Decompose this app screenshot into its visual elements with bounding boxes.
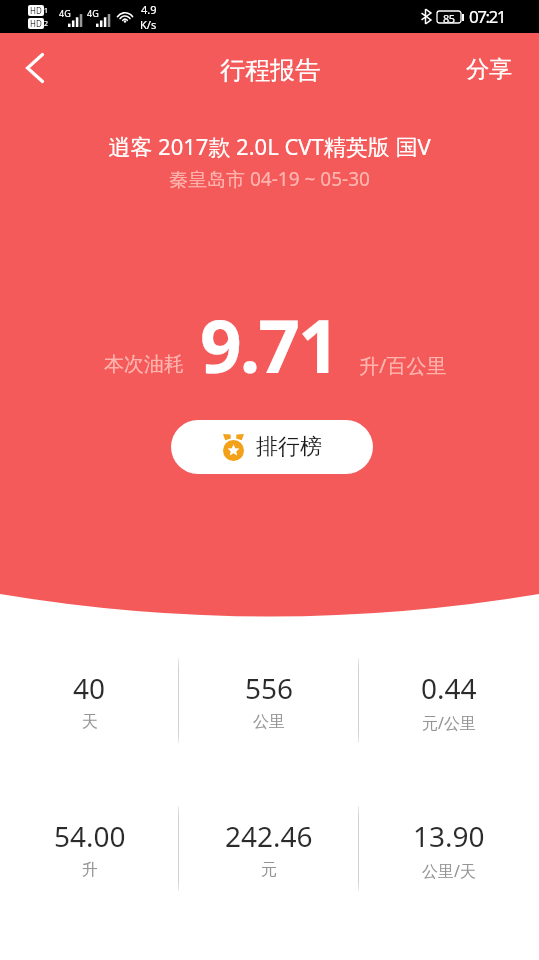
staticText: 升 <box>82 860 98 880</box>
staticText: 元 <box>261 860 277 880</box>
staticText: 升/百公里 <box>359 352 447 379</box>
staticText: 242.46 <box>225 817 313 855</box>
staticText: 4G <box>87 7 99 19</box>
staticText: 54.00 <box>54 817 126 855</box>
staticText: 4.9 <box>141 2 157 17</box>
button[interactable]: 40 <box>0 669 179 732</box>
button[interactable]: 54.00 <box>0 817 179 880</box>
staticText: 2 <box>44 19 49 29</box>
staticText: 排行榜 <box>256 433 322 461</box>
staticText: 9.71 <box>200 295 338 394</box>
staticText: 行程报告 <box>220 55 320 86</box>
staticText: 40 <box>73 669 106 707</box>
staticText: 4G <box>59 7 71 19</box>
button[interactable]: 13.90 <box>359 817 539 882</box>
staticText: 1 <box>44 6 49 16</box>
button[interactable]: 分享 <box>439 34 539 103</box>
staticText: 秦皇岛市 04-19 ~ 05-30 <box>0 166 539 192</box>
staticText: 本次油耗 <box>104 352 184 377</box>
staticText: 公里/天 <box>422 860 476 882</box>
staticText: 分享 <box>466 55 512 84</box>
staticText: 0.44 <box>421 669 477 707</box>
staticText: 天 <box>82 712 98 732</box>
button[interactable]: 排行榜 <box>171 420 373 474</box>
staticText: 逍客 2017款 2.0L CVT精英版 国V <box>0 131 539 161</box>
staticText: 公里 <box>253 712 285 732</box>
button[interactable]: 0.44 <box>359 669 539 734</box>
button[interactable]: Back <box>0 33 70 103</box>
staticText: 13.90 <box>413 817 485 855</box>
staticText: 556 <box>245 669 294 707</box>
staticText: HD <box>30 18 42 29</box>
staticText: K/s <box>140 17 157 32</box>
button[interactable]: 556 <box>179 669 359 732</box>
staticText: 85 <box>443 11 455 23</box>
staticText: 07:21 <box>469 5 505 28</box>
staticText: HD <box>30 5 42 16</box>
button[interactable]: 242.46 <box>179 817 359 880</box>
staticText: 元/公里 <box>422 712 476 734</box>
